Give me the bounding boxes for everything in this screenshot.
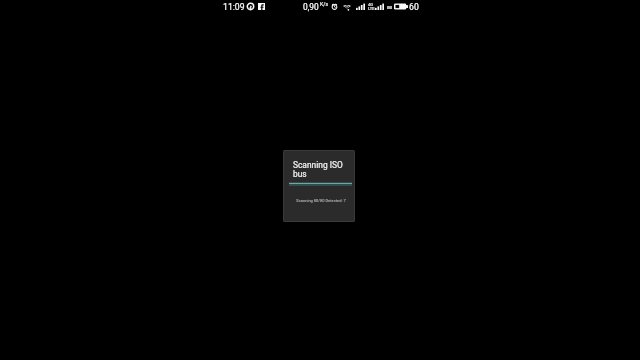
staticText: K/s bbox=[320, 1, 329, 7]
other: Mobile signal bbox=[375, 3, 384, 10]
other: Facebook bbox=[258, 3, 265, 10]
staticText: 60 bbox=[409, 2, 419, 12]
staticText: 11:09 bbox=[223, 2, 245, 12]
button[interactable]: Scanning ISO bus bbox=[283, 150, 355, 222]
staticText: Scanning 80/80 Detected: 7 bbox=[285, 198, 355, 203]
staticText: Scanning ISO bus bbox=[293, 160, 343, 179]
staticText: 4G bbox=[368, 2, 374, 7]
other: Wi-Fi bbox=[343, 3, 351, 10]
staticText: 0,90 bbox=[303, 2, 319, 12]
other: Alarm set bbox=[331, 3, 338, 10]
other: Notification bbox=[247, 3, 254, 10]
other: Battery 60 percent bbox=[394, 3, 408, 10]
staticText: LTE bbox=[368, 6, 375, 11]
other: Mobile signal bbox=[356, 3, 365, 10]
